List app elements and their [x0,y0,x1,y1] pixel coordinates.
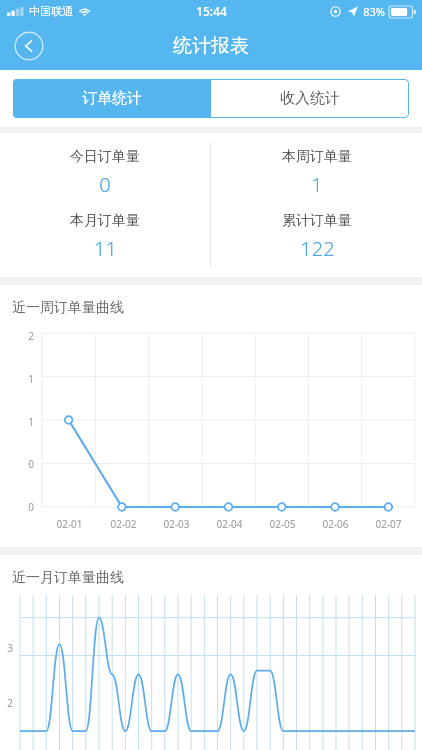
staticText: 中国联通 [29,4,73,18]
staticText: 1 [28,415,34,426]
staticText: 累计订单量 [282,212,352,230]
staticText: 02-06 [322,517,349,531]
staticText: 本周订单量 [282,148,352,166]
staticText: 订单统计 [82,89,142,108]
staticText: 15:44 [196,3,227,19]
staticText: 本月订单量 [70,212,140,230]
staticText: 11 [94,235,117,262]
staticText: 收入统计 [280,89,340,108]
staticText: 0 [28,457,34,468]
staticText: 1 [311,171,323,198]
button[interactable]: 本周订单量 [282,148,352,198]
staticText: 统计报表 [173,34,249,58]
button[interactable]: 今日订单量 [70,148,140,198]
staticText: 2 [7,696,13,710]
button[interactable]: Back [14,31,44,61]
staticText: 近一月订单量曲线 [12,569,124,587]
staticText: 83% [363,4,385,19]
staticText: 02-01 [56,517,83,531]
staticText: 122 [300,235,335,262]
button[interactable]: 本月订单量 [70,212,140,262]
staticText: 2 [28,329,34,340]
staticText: 今日订单量 [70,148,140,166]
staticText: 02-03 [163,517,190,531]
staticText: 0 [28,500,34,511]
staticText: 近一周订单量曲线 [12,299,124,317]
staticText: 1 [28,372,34,383]
staticText: 0 [99,171,111,198]
button[interactable]: 订单统计 [13,79,211,118]
staticText: 02-04 [216,517,243,531]
staticText: 02-02 [110,517,137,531]
button[interactable]: 累计订单量 [282,212,352,262]
staticText: 02-05 [269,517,296,531]
staticText: 02-07 [375,517,402,531]
staticText: 3 [7,641,13,655]
button[interactable]: 收入统计 [211,79,409,118]
